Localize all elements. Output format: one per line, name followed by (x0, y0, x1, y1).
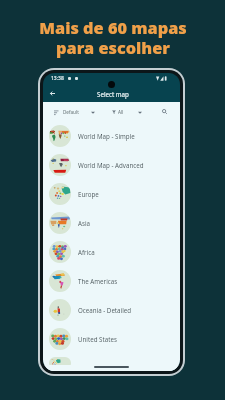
staticText: World Map - Simple (78, 132, 135, 140)
staticText: Mais de 60 mapas para escolher (39, 17, 187, 59)
button[interactable]: World Map - Simple (43, 121, 180, 150)
button[interactable]: United States (43, 324, 180, 353)
button[interactable]: Default (54, 109, 95, 115)
staticText: Oceania - Detailed (78, 306, 132, 314)
staticText: The Americas (78, 277, 118, 285)
button[interactable]: Africa (43, 237, 180, 266)
staticText: 13:38 (51, 75, 64, 82)
staticText: Africa (78, 248, 95, 256)
button[interactable]: Back (47, 88, 58, 99)
button[interactable]: Asia (43, 208, 180, 237)
button[interactable]: Search (159, 106, 170, 117)
staticText: Asia (78, 219, 90, 227)
staticText: Select map (97, 90, 129, 98)
staticText: Europe (78, 190, 99, 198)
button[interactable]: Europe (43, 179, 180, 208)
button[interactable]: Oceania - Detailed (43, 295, 180, 324)
staticText: Default (63, 109, 79, 115)
staticText: United States (78, 335, 117, 343)
button[interactable]: World Map - Advanced (43, 150, 180, 179)
button[interactable]: The Americas (43, 266, 180, 295)
staticText: All (118, 109, 124, 115)
staticText: World Map - Advanced (78, 161, 144, 169)
button[interactable]: All (112, 109, 142, 115)
